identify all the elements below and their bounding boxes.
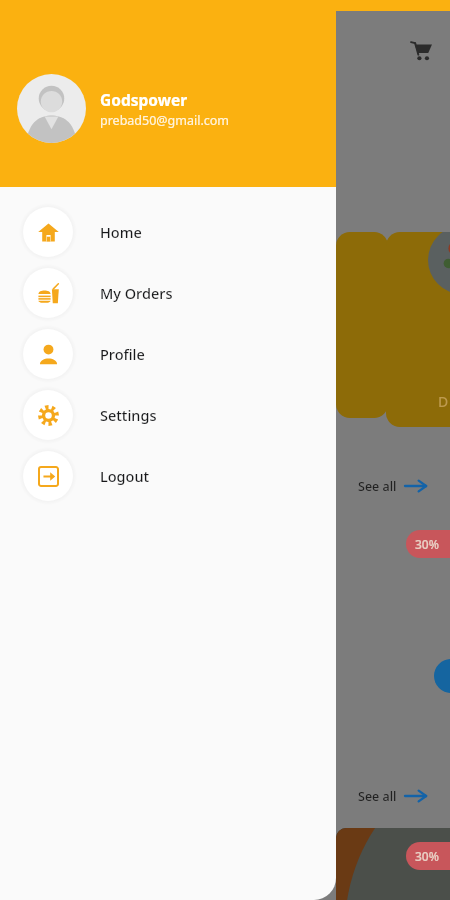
button[interactable]: Settings xyxy=(0,384,336,445)
staticText: Settings xyxy=(100,405,157,425)
button[interactable]: Profile xyxy=(0,323,336,384)
button[interactable]: Cart xyxy=(404,33,438,67)
other: My Orders xyxy=(38,283,59,304)
staticText: See all xyxy=(358,788,397,805)
staticText: My Orders xyxy=(100,283,173,303)
other: Home xyxy=(38,222,59,243)
staticText: 30% xyxy=(415,848,439,864)
button[interactable]: See all xyxy=(358,783,427,809)
staticText: Godspower xyxy=(100,89,188,110)
button[interactable]: Add xyxy=(434,659,450,693)
staticText: Home xyxy=(100,222,142,242)
staticText: prebad50@gmail.com xyxy=(100,112,230,129)
button[interactable]: Logout xyxy=(0,445,336,506)
other: Settings xyxy=(38,405,59,426)
button[interactable] xyxy=(336,232,388,418)
staticText: D xyxy=(438,392,449,411)
button[interactable]: Home xyxy=(0,201,336,262)
other: Logout xyxy=(38,466,59,487)
staticText: 30% xyxy=(415,536,443,552)
button[interactable]: See all xyxy=(358,473,427,499)
staticText: Logout xyxy=(100,466,150,486)
other: Profile xyxy=(38,344,59,365)
button[interactable]: My Orders xyxy=(0,262,336,323)
staticText: Profile xyxy=(100,344,145,364)
button[interactable]: D xyxy=(386,232,450,427)
staticText: See all xyxy=(358,478,397,495)
